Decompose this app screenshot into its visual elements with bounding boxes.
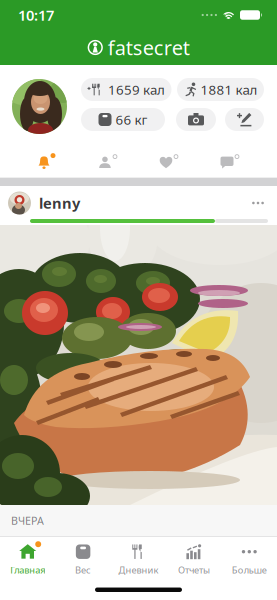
button[interactable]: 1881 кал <box>177 78 264 101</box>
button[interactable]: Likes <box>154 154 178 172</box>
staticText: 10:17 <box>18 5 54 25</box>
button[interactable]: Camera <box>176 108 216 131</box>
staticText: fatsecret <box>108 34 190 61</box>
button[interactable]: Notifications <box>32 154 56 172</box>
button[interactable]: Followers <box>93 154 117 172</box>
staticText: Отчеты <box>178 564 210 576</box>
button[interactable]: Add entry <box>225 108 264 131</box>
button[interactable]: lenny <box>8 191 31 214</box>
button[interactable]: Дневник <box>111 544 166 576</box>
button[interactable]: 66 кг <box>81 108 165 131</box>
button[interactable]: Вес <box>55 544 111 576</box>
button[interactable]: Больше <box>222 544 277 576</box>
button[interactable]: Отчеты <box>166 544 222 576</box>
button[interactable]: Главная <box>0 544 55 576</box>
staticText: lenny <box>39 193 80 213</box>
staticText: ВЧЕРА <box>11 513 44 528</box>
staticText: 1659 кал <box>108 81 165 98</box>
button[interactable]: Food photo <box>0 225 277 505</box>
staticText: Дневник <box>118 564 158 576</box>
staticText: 1881 кал <box>200 81 257 98</box>
button[interactable]: More options <box>249 198 267 208</box>
button[interactable]: 1659 кал <box>81 78 171 101</box>
staticText: Вес <box>75 564 91 576</box>
staticText: Главная <box>10 564 45 576</box>
button[interactable]: lenny <box>39 193 80 213</box>
staticText: 66 кг <box>115 111 147 128</box>
staticText: Больше <box>232 564 267 576</box>
button[interactable]: Profile <box>12 79 67 134</box>
button[interactable]: Comments <box>215 154 239 172</box>
